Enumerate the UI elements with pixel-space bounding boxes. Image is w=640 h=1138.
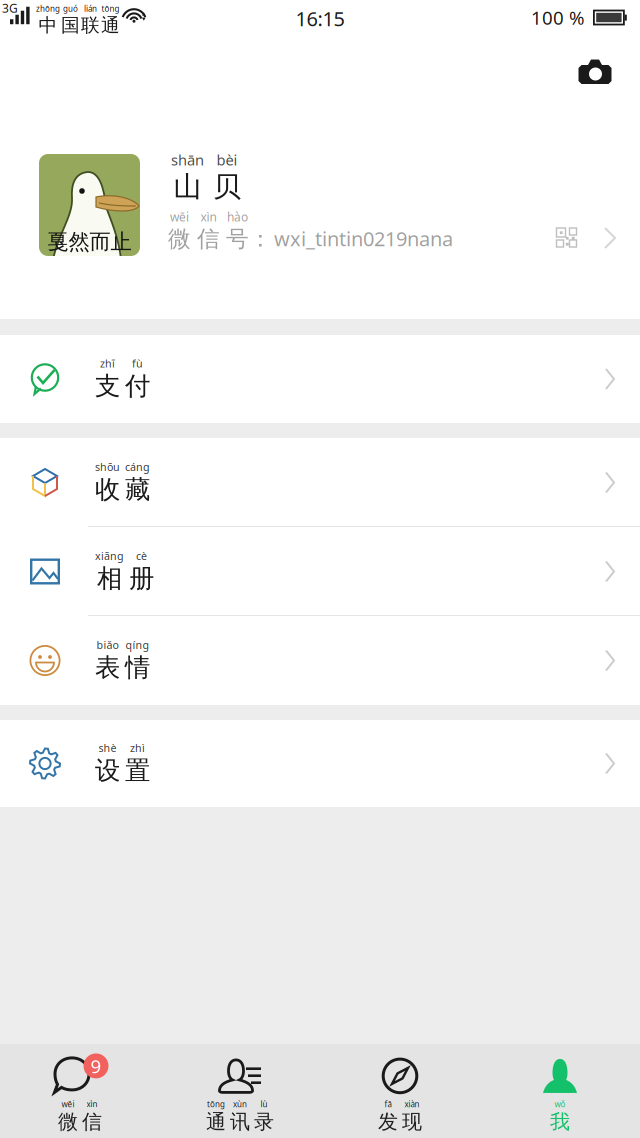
button[interactable]: My QR code <box>544 215 590 261</box>
staticText: 信 <box>82 1109 102 1134</box>
button[interactable]: WeChat, 9 unread <box>0 1048 160 1138</box>
staticText: 号 <box>226 225 249 253</box>
staticText: 藏 <box>125 474 150 505</box>
staticText: zhōng <box>36 3 60 14</box>
staticText: xiàn <box>404 1099 419 1109</box>
staticText: fā <box>384 1099 391 1109</box>
button[interactable]: 戛然而止 <box>0 90 640 319</box>
staticText: 情 <box>125 652 150 683</box>
staticText: 戛然而止 <box>47 229 131 255</box>
staticText: biǎo <box>96 638 118 652</box>
staticText: 中 <box>38 14 57 37</box>
button[interactable]: Contacts <box>160 1048 320 1138</box>
staticText: 相 <box>97 563 122 594</box>
staticText: guó <box>63 3 78 14</box>
staticText: 设 <box>95 755 120 786</box>
button[interactable]: xiāng <box>0 527 640 616</box>
staticText: 支 <box>95 370 120 402</box>
button[interactable]: biǎo <box>0 616 640 705</box>
staticText: 联 <box>81 14 100 37</box>
button[interactable]: Camera <box>572 54 618 90</box>
button[interactable]: shè <box>0 720 640 807</box>
staticText: shōu <box>95 460 120 474</box>
staticText: 表 <box>95 652 120 683</box>
staticText: 100 % <box>531 5 585 30</box>
staticText: zhī <box>100 356 115 371</box>
staticText: 微 <box>58 1109 78 1134</box>
staticText: 微 <box>168 225 191 253</box>
staticText: wēi <box>170 209 189 225</box>
staticText: 贝 <box>213 169 241 204</box>
button[interactable]: zhī <box>0 335 640 423</box>
staticText: lù <box>260 1099 267 1109</box>
staticText: 册 <box>129 563 154 594</box>
staticText: 录 <box>254 1109 274 1134</box>
staticText: 16:15 <box>295 5 344 32</box>
staticText: 付 <box>125 370 150 402</box>
staticText: 发 <box>378 1109 398 1134</box>
staticText: xiāng <box>95 549 124 563</box>
staticText: bèi <box>216 150 237 169</box>
button[interactable]: Discover <box>320 1048 480 1138</box>
staticText: qíng <box>125 638 149 652</box>
staticText: 9 <box>90 1053 101 1078</box>
staticText: xìn <box>200 209 216 225</box>
staticText: tōng <box>207 1099 225 1109</box>
staticText: wēi <box>61 1099 74 1109</box>
staticText: lián <box>84 3 97 14</box>
staticText: cè <box>136 549 147 563</box>
button[interactable]: Me <box>480 1048 640 1138</box>
staticText: xìn <box>86 1099 97 1109</box>
staticText: fù <box>132 356 143 371</box>
staticText: 国 <box>61 14 80 37</box>
staticText: 讯 <box>230 1109 250 1134</box>
staticText: cáng <box>125 460 150 474</box>
button[interactable]: shōu <box>0 438 640 527</box>
staticText: zhì <box>130 741 145 755</box>
staticText: 山 <box>173 169 201 204</box>
staticText: 我 <box>550 1109 570 1134</box>
staticText: 通 <box>206 1109 226 1134</box>
staticText: 通 <box>101 14 120 37</box>
staticText: xùn <box>233 1099 247 1109</box>
staticText: shān <box>171 150 204 169</box>
staticText: 收 <box>95 474 120 505</box>
staticText: wǒ <box>554 1099 565 1109</box>
staticText: 信 <box>197 225 220 253</box>
staticText: wxi_tintin0219nana <box>274 225 453 252</box>
staticText: hào <box>227 209 248 225</box>
staticText: 现 <box>402 1109 422 1134</box>
staticText: 3G <box>2 0 18 16</box>
staticText: shè <box>98 741 116 755</box>
staticText: ： <box>249 225 272 253</box>
staticText: 置 <box>125 755 150 786</box>
staticText: tōng <box>101 3 119 14</box>
